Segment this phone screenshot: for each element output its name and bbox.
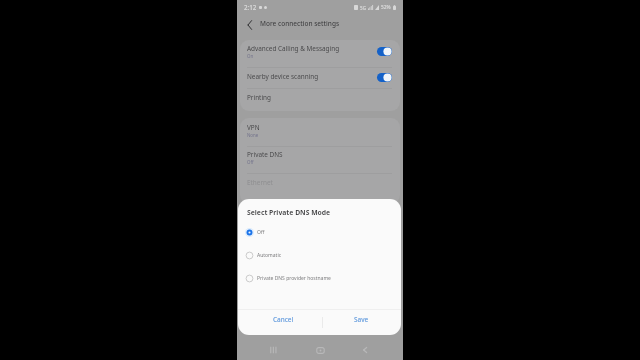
staticText: On bbox=[247, 53, 254, 59]
button[interactable]: Nearby device scanning bbox=[240, 67, 400, 89]
button[interactable]: Advanced Calling & Messaging bbox=[240, 40, 400, 67]
staticText: Off bbox=[247, 159, 254, 165]
staticText: Nearby device scanning bbox=[247, 72, 319, 81]
staticText: Private DNS bbox=[247, 150, 283, 159]
button[interactable]: Printing bbox=[240, 88, 400, 111]
button[interactable]: VPN bbox=[240, 118, 400, 146]
button[interactable]: Automatic bbox=[238, 250, 401, 261]
button[interactable]: Save bbox=[323, 310, 401, 335]
button[interactable]: Toggle bbox=[377, 73, 392, 82]
button[interactable]: Private DNS provider hostname bbox=[238, 273, 401, 284]
staticText: 2:12 bbox=[244, 3, 257, 11]
button[interactable]: Off bbox=[238, 227, 401, 238]
staticText: Select Private DNS Mode bbox=[247, 208, 331, 217]
staticText: Advanced Calling & Messaging bbox=[247, 44, 340, 53]
button[interactable]: Navigate up bbox=[242, 17, 258, 33]
button[interactable]: Back bbox=[357, 342, 373, 358]
staticText: Off bbox=[257, 229, 265, 236]
staticText: Ethernet bbox=[247, 178, 273, 187]
staticText: 5G bbox=[360, 5, 366, 11]
button[interactable]: Toggle bbox=[377, 47, 392, 56]
staticText: Save bbox=[354, 315, 369, 324]
button[interactable]: Home bbox=[312, 342, 328, 358]
staticText: Printing bbox=[247, 93, 271, 102]
button[interactable]: Recent apps bbox=[265, 342, 281, 358]
staticText: 52% bbox=[381, 4, 391, 11]
button[interactable]: Cancel bbox=[238, 310, 322, 335]
staticText: Automatic bbox=[257, 252, 282, 259]
staticText: More connection settings bbox=[260, 19, 340, 28]
staticText: None bbox=[247, 132, 259, 138]
staticText: VPN bbox=[247, 123, 260, 132]
staticText: Cancel bbox=[273, 315, 294, 324]
staticText: Private DNS provider hostname bbox=[257, 275, 331, 282]
button[interactable]: Private DNS bbox=[240, 146, 400, 173]
